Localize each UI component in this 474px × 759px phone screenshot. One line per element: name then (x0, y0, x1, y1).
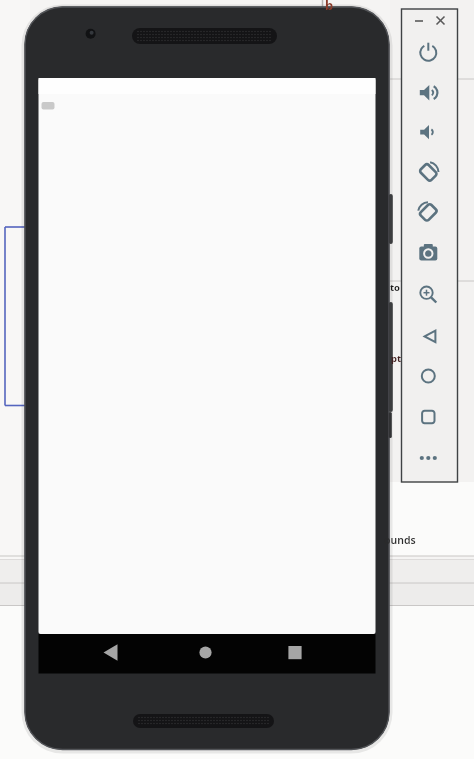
button[interactable] (412, 116, 444, 148)
button[interactable] (432, 12, 448, 28)
button[interactable] (412, 442, 444, 474)
staticText: to (390, 281, 401, 294)
button[interactable] (412, 279, 444, 311)
button[interactable] (88, 634, 136, 673)
staticText: pt (391, 352, 402, 365)
button[interactable] (411, 13, 427, 29)
button[interactable] (412, 77, 444, 109)
staticText: ounds (384, 533, 416, 547)
button[interactable] (412, 37, 444, 69)
button[interactable] (412, 360, 444, 392)
button[interactable] (412, 401, 444, 433)
button[interactable] (412, 237, 444, 269)
button[interactable] (412, 156, 444, 188)
button[interactable] (412, 320, 444, 352)
button[interactable] (271, 634, 319, 673)
staticText: b (325, 0, 334, 14)
button[interactable] (412, 196, 444, 228)
button[interactable] (182, 634, 230, 673)
